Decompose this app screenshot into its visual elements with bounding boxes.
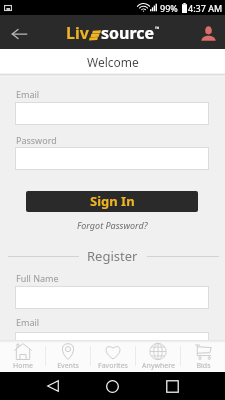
button[interactable]	[15, 332, 209, 355]
staticText: 99%	[160, 2, 178, 14]
staticText: Events	[57, 361, 79, 371]
button[interactable]	[15, 147, 209, 170]
button[interactable]: Events	[46, 340, 90, 372]
button[interactable]: Profile	[194, 18, 222, 46]
button[interactable]: Anywhere	[136, 340, 180, 372]
staticText: Email	[16, 88, 40, 100]
button[interactable]: Back	[5, 18, 33, 46]
button[interactable]	[15, 102, 209, 125]
staticText: Register	[87, 247, 138, 264]
button[interactable]: Favorites	[91, 340, 135, 372]
button[interactable]: Recents	[158, 372, 186, 400]
staticText: Password	[16, 134, 57, 146]
staticText: Home	[13, 361, 33, 371]
staticText: Liv	[66, 22, 89, 44]
staticText: Forgot Password?	[77, 219, 148, 231]
staticText: Anywhere	[142, 361, 175, 371]
staticText: Bids	[196, 361, 211, 371]
staticText: Sign In	[90, 192, 135, 210]
button[interactable]: Home	[98, 372, 126, 400]
staticText: Favorites	[98, 361, 128, 371]
staticText: 4:37 AM	[188, 2, 223, 14]
button[interactable]: Home	[0, 340, 45, 372]
button[interactable]: Forgot Password?	[0, 218, 225, 232]
button[interactable]: Bids	[181, 340, 225, 372]
button[interactable]	[15, 286, 209, 309]
staticText: Welcome	[87, 54, 139, 70]
button[interactable]: Back	[39, 372, 67, 400]
button[interactable]: Sign In	[26, 191, 198, 212]
staticText: Full Name	[16, 272, 59, 284]
staticText: source	[101, 22, 155, 44]
staticText: Email	[16, 316, 40, 328]
staticText: ™	[155, 25, 160, 33]
